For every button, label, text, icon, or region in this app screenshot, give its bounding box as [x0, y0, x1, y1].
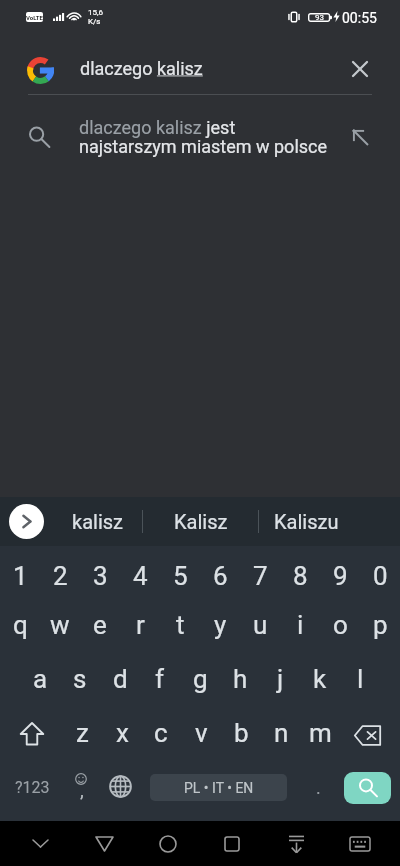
button[interactable]: . — [296, 760, 340, 814]
staticText: k — [313, 664, 327, 694]
staticText: q — [13, 610, 28, 640]
button[interactable]: 4 — [120, 546, 160, 598]
button[interactable]: 3 — [80, 546, 120, 598]
staticText: Kalisz — [174, 510, 228, 533]
staticText: m — [309, 718, 332, 748]
button[interactable]: 6 — [200, 546, 240, 598]
button[interactable]: s — [60, 652, 100, 706]
staticText: PL • IT • EN — [184, 780, 254, 796]
button[interactable]: Kaliszu — [259, 497, 354, 546]
staticText: 00:55 — [342, 10, 377, 26]
staticText: z — [76, 718, 89, 748]
staticText: t — [176, 610, 185, 640]
button[interactable]: w — [40, 598, 80, 652]
button[interactable]: g — [180, 652, 220, 706]
button[interactable]: Downloads — [272, 821, 320, 866]
button[interactable]: u — [240, 598, 280, 652]
staticText: x — [116, 718, 129, 748]
button[interactable]: 5 — [160, 546, 200, 598]
button[interactable]: 2 — [40, 546, 80, 598]
button[interactable]: Kalisz — [143, 497, 258, 546]
button[interactable]: Back — [80, 821, 128, 866]
staticText: , — [80, 779, 84, 801]
button[interactable]: 9 — [320, 546, 360, 598]
staticText: 93 — [315, 13, 324, 22]
staticText: VoLTE — [26, 14, 43, 21]
staticText: h — [233, 664, 248, 694]
staticText: d — [113, 664, 128, 694]
button[interactable]: Use suggestion — [345, 122, 375, 152]
staticText: ?123 — [15, 778, 50, 797]
staticText: kalisz — [72, 510, 123, 533]
staticText: b — [234, 718, 249, 748]
button[interactable]: Hide keyboard — [16, 821, 64, 866]
staticText: 7 — [253, 561, 268, 591]
button[interactable]: p — [360, 598, 400, 652]
staticText: e — [93, 610, 107, 640]
button[interactable]: v — [181, 706, 221, 760]
button[interactable]: Emoji — [64, 760, 97, 814]
staticText: l — [357, 664, 364, 694]
button[interactable]: z — [62, 706, 102, 760]
staticText: g — [193, 664, 208, 694]
button[interactable]: o — [320, 598, 360, 652]
staticText: o — [333, 610, 348, 640]
button[interactable]: t — [160, 598, 200, 652]
button[interactable]: Shift — [0, 706, 62, 760]
button[interactable]: More suggestions — [4, 497, 49, 546]
staticText: r — [136, 610, 145, 640]
staticText: c — [154, 718, 168, 748]
button[interactable]: kalisz — [53, 497, 142, 546]
staticText: v — [195, 718, 208, 748]
button[interactable]: q — [0, 598, 40, 652]
button[interactable]: n — [261, 706, 301, 760]
staticText: w — [50, 610, 70, 640]
button[interactable]: ?123 — [0, 760, 64, 814]
button[interactable]: y — [200, 598, 240, 652]
button[interactable]: h — [220, 652, 260, 706]
staticText: a — [33, 664, 48, 694]
button[interactable]: 8 — [280, 546, 320, 598]
staticText: s — [73, 664, 87, 694]
staticText: u — [253, 610, 268, 640]
staticText: j — [277, 664, 284, 694]
staticText: 8 — [293, 561, 308, 591]
button[interactable]: b — [221, 706, 261, 760]
staticText: Kaliszu — [274, 510, 339, 533]
button[interactable]: 1 — [0, 546, 40, 598]
staticText: 6 — [213, 561, 228, 591]
staticText: dlaczego kalisz — [80, 58, 203, 79]
button[interactable]: c — [141, 706, 181, 760]
button[interactable]: k — [300, 652, 340, 706]
button[interactable]: PL • IT • EN — [150, 774, 287, 801]
staticText: y — [214, 610, 227, 640]
button[interactable]: a — [20, 652, 60, 706]
button[interactable]: Search — [344, 772, 391, 804]
staticText: 3 — [93, 561, 108, 591]
button[interactable]: Change language — [97, 760, 143, 814]
button[interactable]: j — [260, 652, 300, 706]
button[interactable]: Clear query — [340, 49, 380, 89]
button[interactable]: Home — [144, 821, 192, 866]
button[interactable]: Backspace — [340, 706, 400, 760]
staticText: i — [297, 610, 304, 640]
button[interactable]: e — [80, 598, 120, 652]
button[interactable]: x — [102, 706, 142, 760]
staticText: 9 — [333, 561, 348, 591]
staticText: f — [155, 664, 165, 694]
button[interactable]: f — [140, 652, 180, 706]
button[interactable]: r — [120, 598, 160, 652]
button[interactable]: Switch keyboard — [336, 821, 384, 866]
button[interactable]: m — [300, 706, 340, 760]
staticText: p — [373, 610, 388, 640]
button[interactable]: 0 — [360, 546, 400, 598]
button[interactable]: d — [100, 652, 140, 706]
staticText: 4 — [133, 561, 148, 591]
button[interactable]: i — [280, 598, 320, 652]
button[interactable]: l — [340, 652, 380, 706]
staticText: . — [316, 777, 321, 798]
button[interactable]: 7 — [240, 546, 280, 598]
staticText: 1 — [13, 561, 28, 591]
button[interactable]: Recents — [208, 821, 256, 866]
button[interactable]: dlaczego kalisz jest najstarszym miastem… — [0, 106, 400, 164]
